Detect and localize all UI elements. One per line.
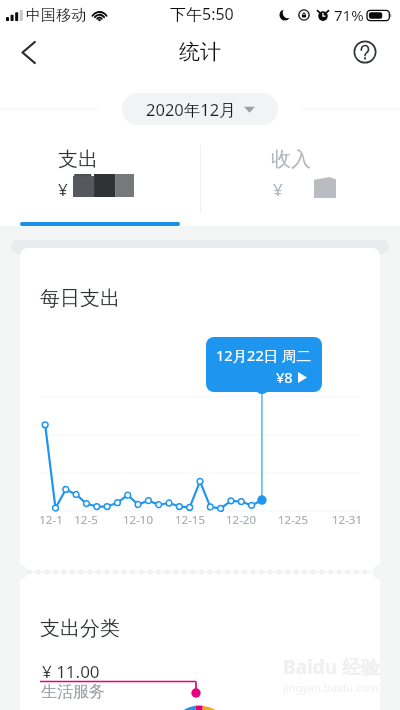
staticText: 12-5	[66, 512, 106, 528]
button[interactable]: 2020年12月	[122, 93, 278, 125]
staticText: 12-1	[31, 512, 71, 528]
staticText: 12-20	[221, 512, 261, 528]
staticText: 中国移动	[26, 6, 86, 25]
staticText: 2020年12月	[146, 98, 236, 121]
staticText: 收入	[271, 147, 311, 172]
staticText: 支出	[58, 147, 98, 172]
staticText: 12-31	[327, 512, 367, 528]
button[interactable]: 收入	[200, 136, 400, 222]
staticText: 12-15	[170, 512, 210, 528]
staticText: 每日支出	[40, 286, 120, 311]
button[interactable]: Help	[345, 32, 385, 72]
staticText: ¥ 11.00	[42, 660, 100, 683]
staticText: ¥8	[276, 367, 293, 387]
staticText: jingyan.baidu.com	[283, 680, 379, 695]
staticText: ¥	[58, 178, 68, 201]
staticText: ¥	[273, 178, 283, 201]
staticText: 12-10	[118, 512, 158, 528]
staticText: 生活服务	[41, 682, 105, 702]
staticText: 下午5:50	[170, 3, 234, 25]
staticText: 71%	[334, 5, 364, 25]
button[interactable]: 支出	[0, 136, 200, 222]
staticText: 12-25	[273, 512, 313, 528]
button[interactable]: Back	[8, 32, 48, 72]
staticText: 统计	[179, 39, 221, 65]
staticText: Baidu 经验	[283, 654, 380, 680]
staticText: 支出分类	[40, 616, 120, 641]
staticText: 12月22日 周二	[216, 345, 311, 365]
